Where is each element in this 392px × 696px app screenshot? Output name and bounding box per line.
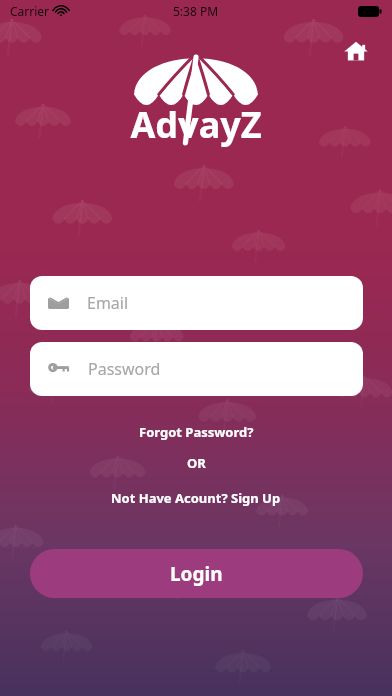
staticText: Password — [88, 358, 161, 380]
staticText: AdvayZ — [130, 100, 262, 149]
staticText: Login — [170, 561, 223, 587]
staticText: Email — [87, 292, 129, 314]
button[interactable]: Forgot Password? — [127, 420, 266, 444]
button[interactable]: Password — [30, 342, 363, 396]
staticText: Forgot Password? — [139, 423, 254, 441]
staticText: Not Have Acount? Sign Up — [111, 489, 281, 507]
staticText: Carrier — [10, 3, 50, 19]
staticText: 5:38 PM — [173, 3, 219, 19]
button[interactable]: Home — [341, 36, 371, 66]
staticText: OR — [187, 454, 206, 472]
button[interactable]: Login — [30, 549, 363, 598]
button[interactable]: Not Have Acount? Sign Up — [99, 486, 293, 510]
button[interactable]: Email — [30, 276, 363, 330]
